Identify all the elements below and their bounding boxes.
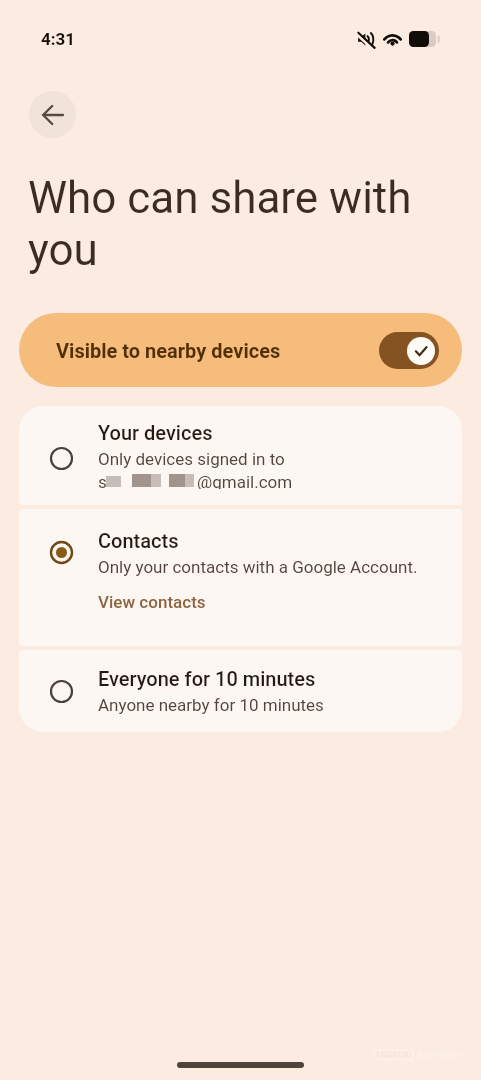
button[interactable]: Visible to nearby devices toggle <box>379 332 439 369</box>
button[interactable]: Everyone for 10 minutes <box>19 650 462 732</box>
staticText: Who can share with you <box>28 172 428 276</box>
staticText: @gmail.com <box>197 472 293 489</box>
button[interactable]: Back <box>29 91 76 138</box>
button[interactable]: View contacts <box>98 592 206 612</box>
staticText: Only your contacts with a Google Account… <box>98 557 418 577</box>
staticText: Contacts <box>98 529 179 552</box>
button[interactable]: Contacts <box>19 509 462 646</box>
staticText: Your devices <box>98 421 213 444</box>
staticText: 4:31 <box>41 29 76 49</box>
staticText: Everyone for 10 minutes <box>98 667 316 690</box>
staticText: s <box>98 472 107 489</box>
staticText: Anyone nearby for 10 minutes <box>98 695 324 715</box>
staticText: ANDROID <box>375 1050 412 1060</box>
staticText: Visible to nearby devices <box>56 339 281 362</box>
staticText: Only devices signed in to <box>98 449 285 469</box>
button[interactable]: Your devices <box>19 406 462 505</box>
staticText: AUTHORITY <box>417 1050 464 1060</box>
button[interactable]: Visible to nearby devices <box>19 313 462 387</box>
